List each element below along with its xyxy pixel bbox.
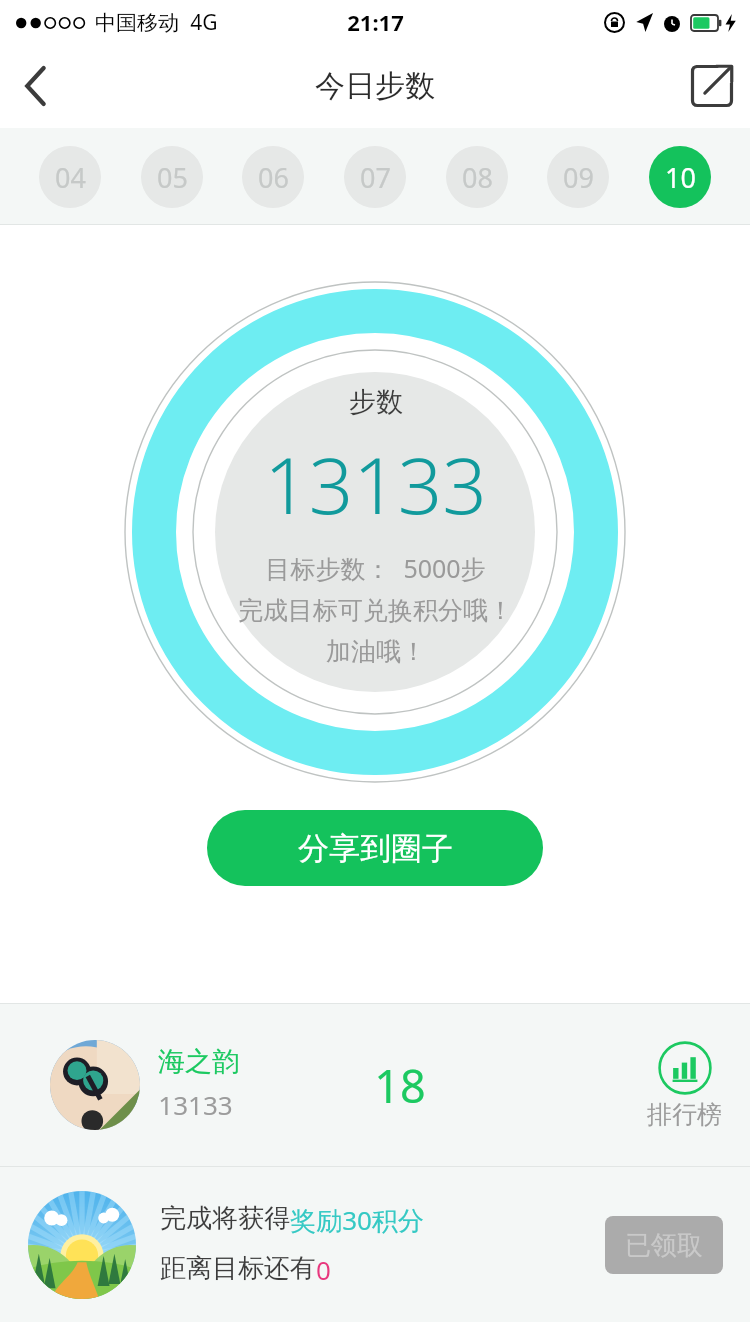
staticText: 分享到圈子 xyxy=(298,829,453,868)
button[interactable]: 07 xyxy=(344,146,406,208)
button[interactable]: 海之韵 xyxy=(0,1004,750,1166)
staticText: 13133 xyxy=(264,431,487,537)
staticText: 4G xyxy=(190,8,218,37)
staticText: 目标步数： 5000步 xyxy=(265,551,486,585)
button[interactable]: 05 xyxy=(141,146,203,208)
button[interactable]: 10 xyxy=(649,146,711,208)
button[interactable]: 已领取 xyxy=(605,1216,723,1274)
staticText: 04 xyxy=(55,159,86,196)
button[interactable]: Back xyxy=(0,50,72,122)
staticText: 21:17 xyxy=(347,7,404,37)
staticText: 07 xyxy=(360,159,391,196)
staticText: 今日步数 xyxy=(315,67,435,105)
button[interactable]: Share xyxy=(674,48,750,124)
staticText: 10 xyxy=(665,159,696,196)
staticText: 18 xyxy=(374,1055,426,1116)
button[interactable]: 分享到圈子 xyxy=(207,810,543,886)
staticText: 加油哦！ xyxy=(326,636,426,667)
staticText: 完成目标可兑换积分哦！ xyxy=(238,595,513,626)
staticText: 06 xyxy=(258,159,289,196)
staticText: 海之韵 xyxy=(158,1045,239,1079)
staticText: 排行榜 xyxy=(647,1099,722,1130)
button[interactable]: 09 xyxy=(547,146,609,208)
staticText: 0 xyxy=(316,1252,331,1287)
staticText: 距离目标还有 xyxy=(160,1252,316,1285)
staticText: 中国移动 xyxy=(95,10,179,36)
staticText: 08 xyxy=(462,159,493,196)
staticText: 05 xyxy=(157,159,188,196)
staticText: 09 xyxy=(563,159,594,196)
staticText: 已领取 xyxy=(625,1229,703,1262)
button[interactable]: 排行榜 xyxy=(639,1033,730,1138)
staticText: 奖励30积分 xyxy=(290,1202,424,1238)
staticText: 步数 xyxy=(349,385,403,419)
staticText: 完成将获得 xyxy=(160,1202,290,1235)
button[interactable]: 04 xyxy=(39,146,101,208)
button[interactable]: 06 xyxy=(242,146,304,208)
button[interactable]: 08 xyxy=(446,146,508,208)
staticText: 13133 xyxy=(158,1087,233,1122)
